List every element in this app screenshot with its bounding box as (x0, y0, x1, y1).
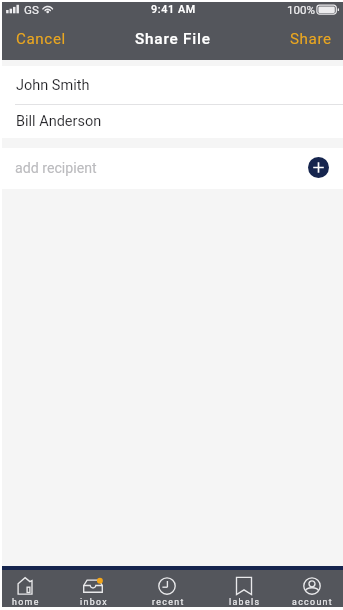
staticText: John Smith (16, 77, 90, 94)
staticText: Share (290, 30, 332, 48)
staticText: account (292, 597, 334, 607)
button[interactable]: labels (216, 570, 272, 607)
staticText: inbox (80, 597, 108, 607)
button[interactable]: Cancel (2, 22, 80, 60)
button[interactable]: Share (276, 22, 343, 60)
button[interactable]: Bill Anderson (2, 105, 343, 138)
staticText: Bill Anderson (16, 113, 102, 130)
staticText: 100% (287, 3, 316, 17)
staticText: home (12, 597, 40, 607)
staticText: labels (229, 597, 261, 607)
button[interactable]: account (284, 570, 340, 607)
button[interactable]: John Smith (2, 66, 343, 104)
button[interactable]: inbox (65, 570, 121, 607)
staticText: Cancel (16, 30, 66, 48)
button[interactable]: recent (139, 570, 195, 607)
staticText: 9:41 AM (3, 3, 343, 16)
staticText: recent (152, 597, 185, 607)
staticText: add recipient (15, 160, 97, 177)
staticText: GS (24, 3, 39, 17)
button[interactable]: add recipient (2, 148, 343, 189)
staticText: Share File (135, 30, 211, 48)
button[interactable]: home (0, 570, 53, 607)
other: Add recipient (308, 157, 329, 178)
